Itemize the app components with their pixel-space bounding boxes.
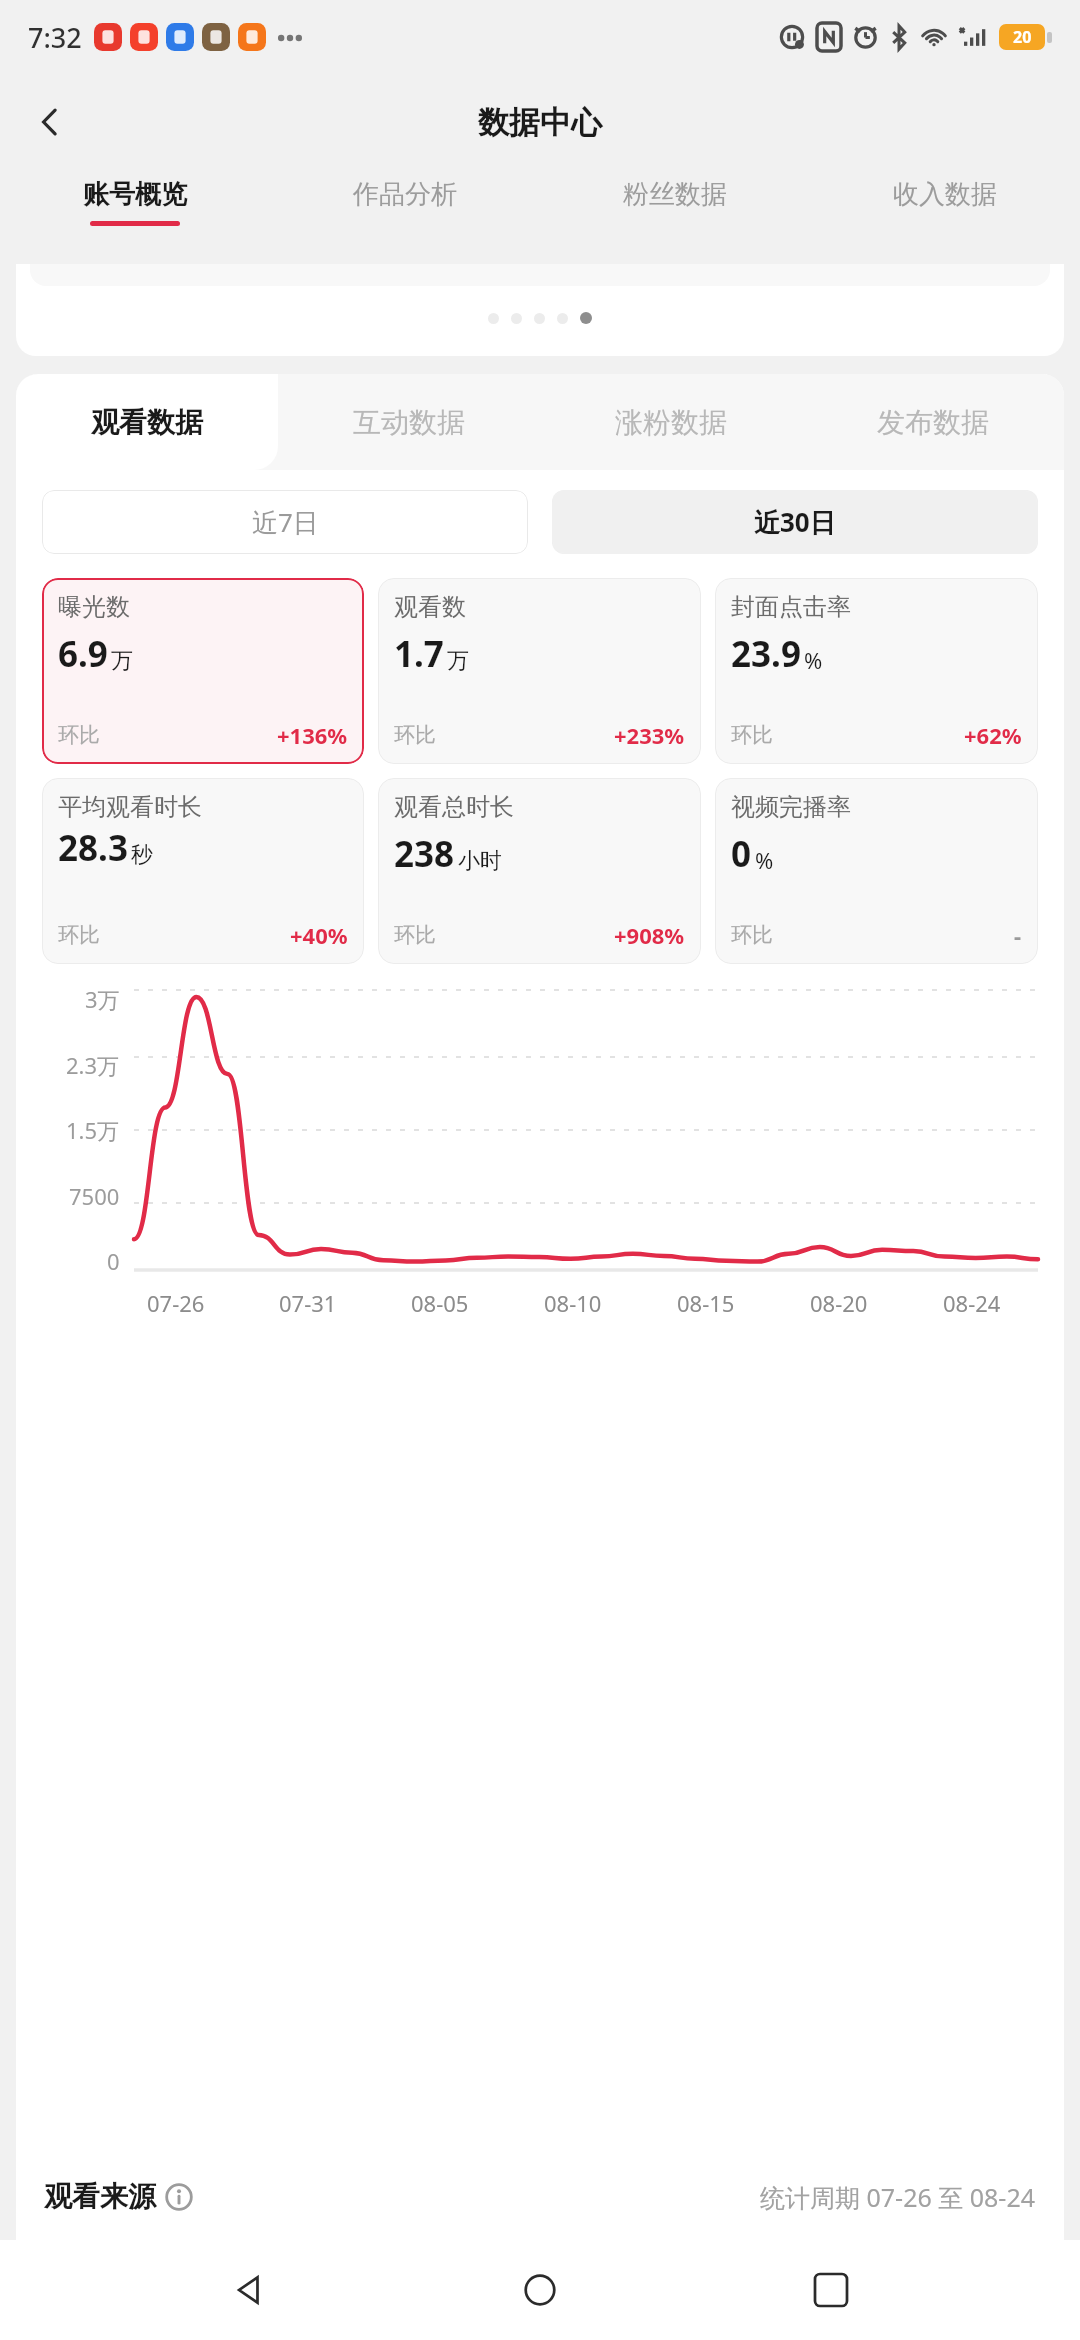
staticText: 1.5万 xyxy=(66,1115,120,1145)
staticText: 曝光数 xyxy=(58,592,130,622)
staticText: % xyxy=(755,845,774,875)
staticText: 发布数据 xyxy=(877,405,989,440)
staticText: 涨粉数据 xyxy=(615,405,727,440)
staticText: 环比 xyxy=(731,922,773,948)
staticText: 环比 xyxy=(394,922,436,948)
button[interactable]: Back xyxy=(16,88,84,156)
staticText: 28.3 xyxy=(58,824,128,872)
staticText: 23.9 xyxy=(731,630,801,678)
button[interactable]: 近7日 xyxy=(42,490,528,554)
staticText: 观看总时长 xyxy=(394,792,514,822)
staticText: % xyxy=(804,645,823,675)
button[interactable]: 账号概览 xyxy=(0,170,270,250)
button[interactable]: 互动数据 xyxy=(278,374,540,470)
staticText: 统计周期 07-26 至 08-24 xyxy=(760,2180,1036,2214)
staticText: 环比 xyxy=(394,722,436,748)
button[interactable]: 封面点击率 xyxy=(715,578,1038,764)
button[interactable]: 观看数 xyxy=(378,578,701,764)
staticText: 互动数据 xyxy=(353,405,465,440)
staticText: 近30日 xyxy=(754,504,836,540)
staticText: 0 xyxy=(107,1246,120,1276)
staticText: 数据中心 xyxy=(478,103,602,142)
staticText: 08-10 xyxy=(544,1288,602,1318)
staticText: 6.9 xyxy=(58,630,108,678)
staticText: 粉丝数据 xyxy=(623,178,727,211)
staticText: 观看数据 xyxy=(91,405,203,440)
staticText: 近7日 xyxy=(252,504,319,540)
staticText: 08-05 xyxy=(411,1288,469,1318)
staticText: 小时 xyxy=(458,847,502,875)
button[interactable]: 观看总时长 xyxy=(378,778,701,964)
staticText: 08-20 xyxy=(810,1288,868,1318)
staticText: 环比 xyxy=(58,722,100,748)
button[interactable]: 发布数据 xyxy=(802,374,1064,470)
button[interactable]: 作品分析 xyxy=(270,170,540,250)
staticText: 238 xyxy=(394,830,455,878)
button[interactable]: 视频完播率 xyxy=(715,778,1038,964)
staticText: +233% xyxy=(614,720,685,750)
staticText: +62% xyxy=(964,720,1022,750)
staticText: 08-15 xyxy=(677,1288,735,1318)
staticText: 2.3万 xyxy=(66,1050,120,1080)
button[interactable]: Recents xyxy=(790,2249,872,2331)
button[interactable]: 粉丝数据 xyxy=(540,170,810,250)
button[interactable]: 观看来源 xyxy=(44,2179,193,2214)
staticText: 账号概览 xyxy=(83,178,187,211)
staticText: 观看数 xyxy=(394,592,466,622)
staticText: 3万 xyxy=(85,984,120,1014)
staticText: 20 xyxy=(1013,26,1032,48)
staticText: 7:32 xyxy=(28,19,82,56)
staticText: 0 xyxy=(731,830,752,878)
staticText: 观看来源 xyxy=(44,2179,156,2214)
button[interactable]: Back xyxy=(209,2249,291,2331)
staticText: 07-31 xyxy=(279,1288,337,1318)
staticText: 万 xyxy=(111,647,133,675)
staticText: 环比 xyxy=(731,722,773,748)
staticText: 08-24 xyxy=(943,1288,1001,1318)
button[interactable] xyxy=(16,264,1064,356)
staticText: 视频完播率 xyxy=(731,792,851,822)
staticText: +40% xyxy=(290,920,348,950)
staticText: 平均观看时长 xyxy=(58,792,202,822)
staticText: 万 xyxy=(447,647,469,675)
staticText: 秒 xyxy=(131,841,153,869)
staticText: 1.7 xyxy=(394,630,444,678)
staticText: +908% xyxy=(614,920,685,950)
staticText: 封面点击率 xyxy=(731,592,851,622)
staticText: +136% xyxy=(277,720,348,750)
button[interactable]: 曝光数 xyxy=(42,578,364,764)
other: Info xyxy=(165,2183,193,2211)
staticText: 7500 xyxy=(69,1181,120,1211)
staticText: 07-26 xyxy=(147,1288,205,1318)
button[interactable]: 平均观看时长 xyxy=(42,778,364,964)
button[interactable]: Home xyxy=(499,2249,581,2331)
button[interactable]: 收入数据 xyxy=(810,170,1080,250)
staticText: 收入数据 xyxy=(893,178,997,211)
button[interactable]: 观看数据 xyxy=(16,374,278,470)
staticText: 环比 xyxy=(58,922,100,948)
button[interactable]: 涨粉数据 xyxy=(540,374,802,470)
button[interactable]: 近30日 xyxy=(552,490,1038,554)
staticText: - xyxy=(1014,920,1022,950)
staticText: 作品分析 xyxy=(353,178,457,211)
